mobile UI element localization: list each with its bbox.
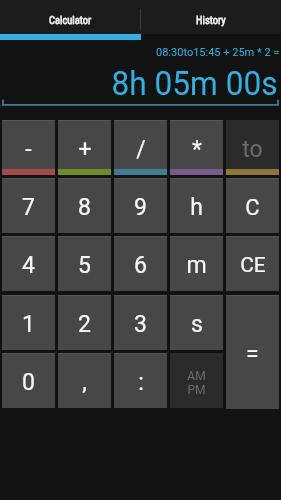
staticText: = bbox=[246, 341, 259, 368]
staticText: m bbox=[186, 252, 207, 279]
staticText: 0 bbox=[22, 369, 35, 396]
staticText: 3 bbox=[134, 311, 147, 338]
staticText: , bbox=[82, 369, 87, 396]
staticText: + bbox=[78, 136, 92, 163]
staticText: h bbox=[190, 194, 203, 221]
button[interactable]: m bbox=[170, 236, 223, 291]
button[interactable]: 4 bbox=[2, 236, 55, 291]
staticText: to bbox=[242, 136, 263, 163]
button[interactable]: Equals bbox=[226, 295, 279, 409]
button[interactable]: 1 bbox=[2, 295, 55, 350]
staticText: : bbox=[138, 369, 144, 396]
staticText: 5 bbox=[78, 252, 91, 279]
staticText: History bbox=[196, 14, 226, 26]
staticText: - bbox=[25, 136, 32, 163]
staticText: 2 bbox=[78, 311, 91, 338]
button[interactable]: CE bbox=[226, 236, 279, 291]
staticText: C bbox=[245, 195, 260, 221]
button[interactable]: History bbox=[140, 0, 281, 34]
button[interactable]: 7 bbox=[2, 178, 55, 233]
staticText: 8h 05m 00s bbox=[111, 63, 278, 103]
staticText: 6 bbox=[134, 252, 147, 279]
staticText: 7 bbox=[22, 194, 35, 221]
button[interactable]: 0 bbox=[2, 353, 55, 408]
button[interactable]: 8 bbox=[58, 178, 111, 233]
button[interactable]: Divide bbox=[114, 120, 167, 175]
button[interactable]: AM PM bbox=[170, 353, 223, 408]
button[interactable]: 3 bbox=[114, 295, 167, 350]
staticText: Calculator bbox=[49, 14, 92, 26]
button[interactable]: s bbox=[170, 295, 223, 350]
button[interactable]: 2 bbox=[58, 295, 111, 350]
button[interactable]: Plus bbox=[58, 120, 111, 175]
button[interactable]: h bbox=[170, 178, 223, 233]
staticText: CE bbox=[240, 253, 266, 278]
button[interactable]: 6 bbox=[114, 236, 167, 291]
button[interactable]: Comma bbox=[58, 353, 111, 408]
staticText: 1 bbox=[22, 311, 35, 338]
staticText: 8 bbox=[78, 194, 91, 221]
staticText: s bbox=[191, 311, 203, 338]
button[interactable]: 5 bbox=[58, 236, 111, 291]
button[interactable]: Multiply bbox=[170, 120, 223, 175]
staticText: 9 bbox=[134, 194, 147, 221]
staticText: * bbox=[192, 136, 202, 163]
button[interactable]: C bbox=[226, 178, 279, 233]
staticText: 4 bbox=[22, 252, 35, 279]
staticText: 08:30to15:45 + 25m * 2 = bbox=[156, 46, 280, 59]
button[interactable]: 9 bbox=[114, 178, 167, 233]
staticText: / bbox=[136, 136, 146, 163]
button[interactable]: Calculator bbox=[0, 0, 140, 34]
button[interactable]: Minus bbox=[2, 120, 55, 175]
button[interactable]: to bbox=[226, 120, 279, 175]
button[interactable]: Colon bbox=[114, 353, 167, 408]
staticText: AM PM bbox=[187, 369, 206, 397]
